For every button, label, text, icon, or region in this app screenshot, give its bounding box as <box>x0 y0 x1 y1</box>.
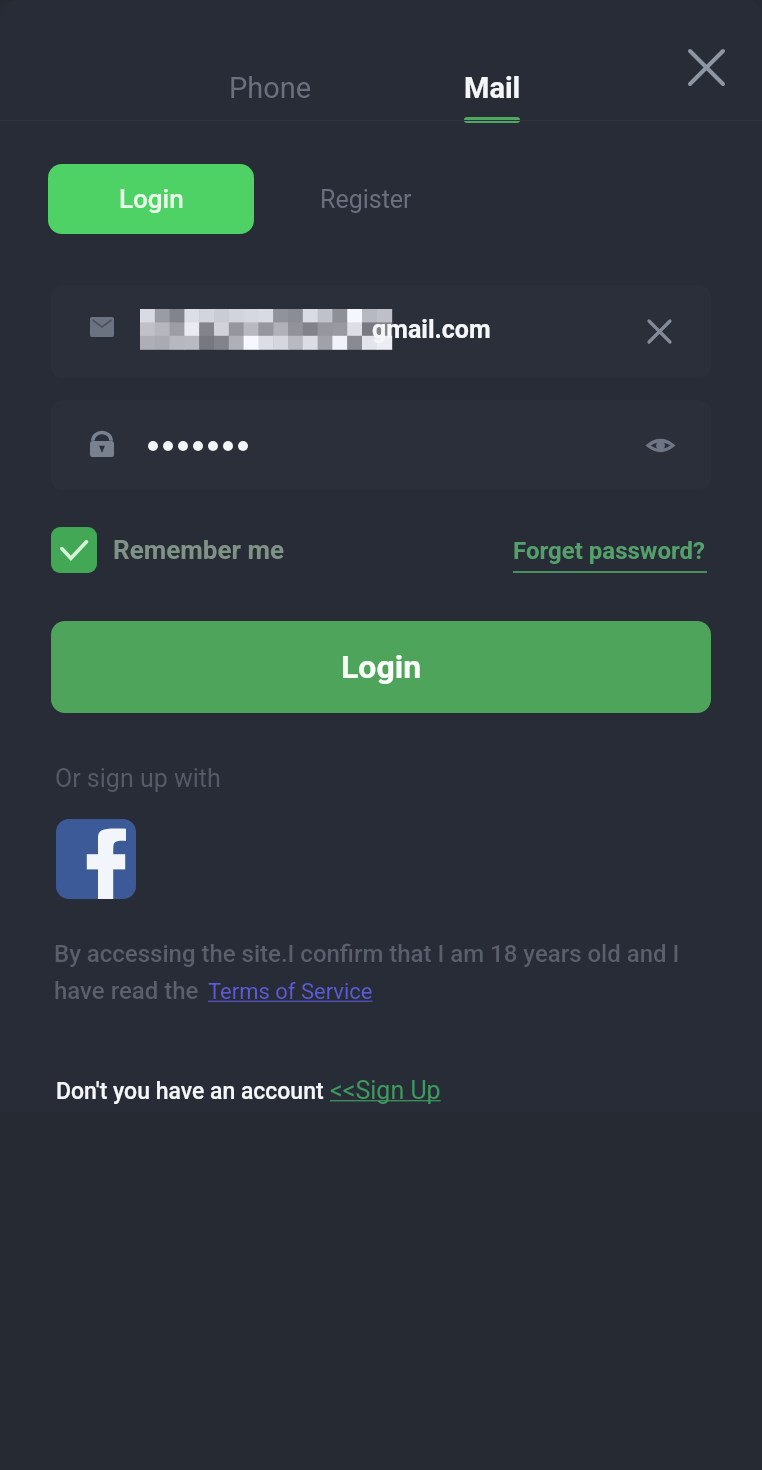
button[interactable]: Show password <box>636 421 684 469</box>
button[interactable]: Terms of Service <box>208 979 373 1005</box>
button[interactable]: Login <box>51 621 711 713</box>
staticText: Login <box>119 184 184 214</box>
staticText: Register <box>320 185 412 214</box>
staticText: Remember me <box>113 535 284 565</box>
button[interactable]: Mail <box>442 62 542 126</box>
staticText: Or sign up with <box>55 764 221 793</box>
staticText: have read the <box>54 977 199 1005</box>
button[interactable]: Forget password? <box>513 537 707 573</box>
button[interactable]: Clear email <box>635 307 683 355</box>
staticText: Login <box>341 648 422 686</box>
button[interactable]: <<Sign Up <box>330 1076 441 1105</box>
button[interactable]: Phone <box>200 64 340 112</box>
button[interactable]: Sign up with Facebook <box>56 819 136 899</box>
staticText: gmail.com <box>372 315 491 344</box>
button[interactable]: Close <box>682 43 730 91</box>
button[interactable]: Remember me <box>51 526 284 574</box>
staticText: Mail <box>464 71 521 105</box>
staticText: By accessing the site.I confirm that I a… <box>54 940 680 968</box>
staticText: Phone <box>229 71 312 105</box>
button[interactable]: Login <box>48 164 254 234</box>
staticText: Forget password? <box>513 537 705 565</box>
button[interactable]: Register <box>276 164 456 234</box>
staticText: Don't you have an account <box>56 1078 330 1105</box>
